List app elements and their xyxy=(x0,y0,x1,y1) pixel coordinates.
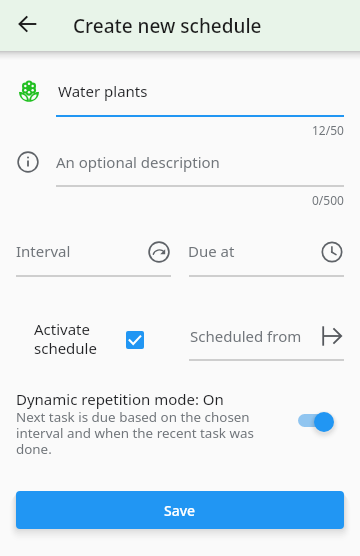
button[interactable]: Scheduled from xyxy=(189,322,344,360)
staticText: An optional description xyxy=(56,152,220,172)
button[interactable]: Save xyxy=(16,491,344,529)
button[interactable]: Activate schedule xyxy=(26,316,154,358)
button[interactable]: Dynamic repetition mode xyxy=(294,406,340,438)
staticText: Activate schedule xyxy=(34,319,97,358)
staticText: Water plants xyxy=(58,81,148,101)
staticText: 0/500 xyxy=(312,192,344,208)
staticText: 12/50 xyxy=(312,122,344,138)
staticText: Due at xyxy=(188,241,235,261)
button[interactable]: Due at xyxy=(189,238,344,276)
button[interactable]: An optional description xyxy=(56,147,344,185)
staticText: Dynamic repetition mode: On xyxy=(16,389,224,409)
staticText: Next task is due based on the chosen int… xyxy=(16,408,269,458)
button[interactable]: Water plants xyxy=(56,76,344,115)
other: Choose interval xyxy=(147,240,171,264)
button[interactable]: Interval xyxy=(16,238,171,276)
staticText: Create new schedule xyxy=(73,13,262,39)
staticText: Interval xyxy=(16,241,71,261)
staticText: Scheduled from xyxy=(190,326,302,346)
staticText: Save xyxy=(164,501,196,520)
other: Choose time xyxy=(320,240,344,264)
button[interactable]: Navigate up xyxy=(4,0,52,48)
other: Scheduled from xyxy=(320,324,344,348)
